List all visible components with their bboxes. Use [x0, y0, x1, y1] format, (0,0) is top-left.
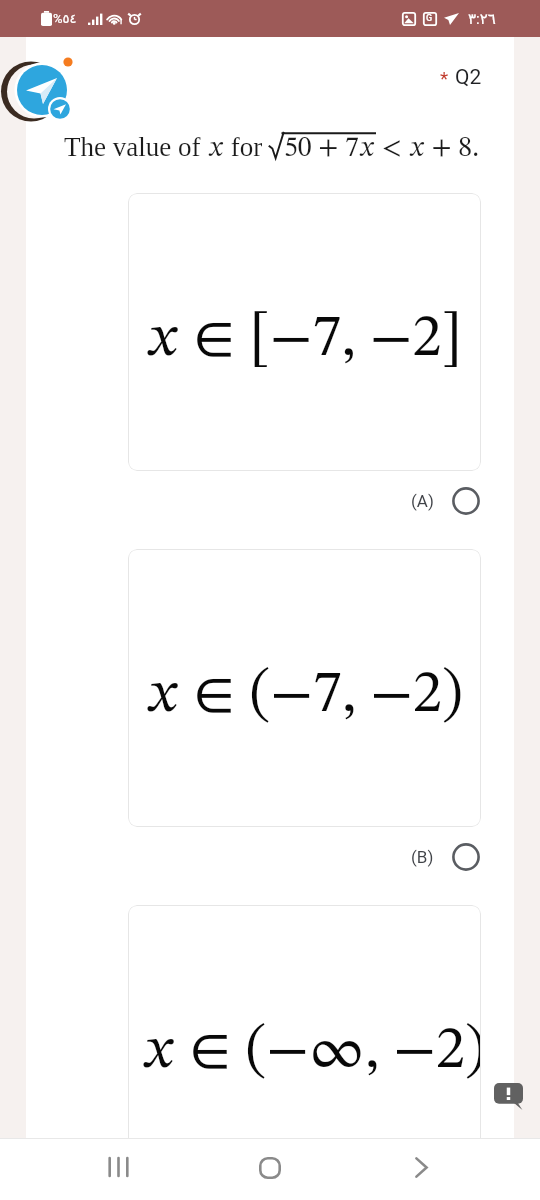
button[interactable]: Select option A [451, 486, 481, 516]
staticText: 𝑥 ∈ [−7, −2] [146, 310, 463, 369]
button[interactable]: Recents [94, 1143, 142, 1191]
button[interactable]: 𝑥 ∈ (−7, −2) [128, 549, 481, 827]
staticText: 50 + 7𝑥 [284, 135, 375, 163]
staticText: 𝑥 ∈ (−7, −2) [146, 666, 464, 725]
staticText: 𝑥 ∈ (−∞, −2) [142, 1022, 481, 1081]
staticText: (A) [411, 491, 434, 511]
staticText: Q2 [455, 65, 482, 90]
button[interactable]: Report a problem [494, 1083, 523, 1110]
staticText: for [224, 132, 269, 162]
staticText: * [440, 67, 449, 89]
staticText: 𝑥 [208, 135, 224, 163]
staticText: %٥٤ [53, 11, 77, 26]
other: Telegram bubble [0, 38, 110, 143]
staticText: 𝑥 [409, 135, 425, 163]
button[interactable]: 𝑥 ∈ [−7, −2] [128, 193, 481, 471]
staticText: + 8. [425, 135, 480, 163]
button[interactable]: 𝑥 ∈ (−∞, −2) [128, 905, 481, 1138]
staticText: ٣:٢٦ [468, 10, 496, 28]
staticText: < [375, 135, 409, 163]
button[interactable]: Home [246, 1144, 294, 1192]
staticText: The value of [64, 132, 208, 162]
button[interactable]: Back [397, 1143, 445, 1191]
staticText: (B) [411, 847, 434, 867]
staticText [269, 135, 273, 163]
staticText: G [426, 13, 433, 24]
button[interactable]: Select option B [451, 842, 481, 872]
